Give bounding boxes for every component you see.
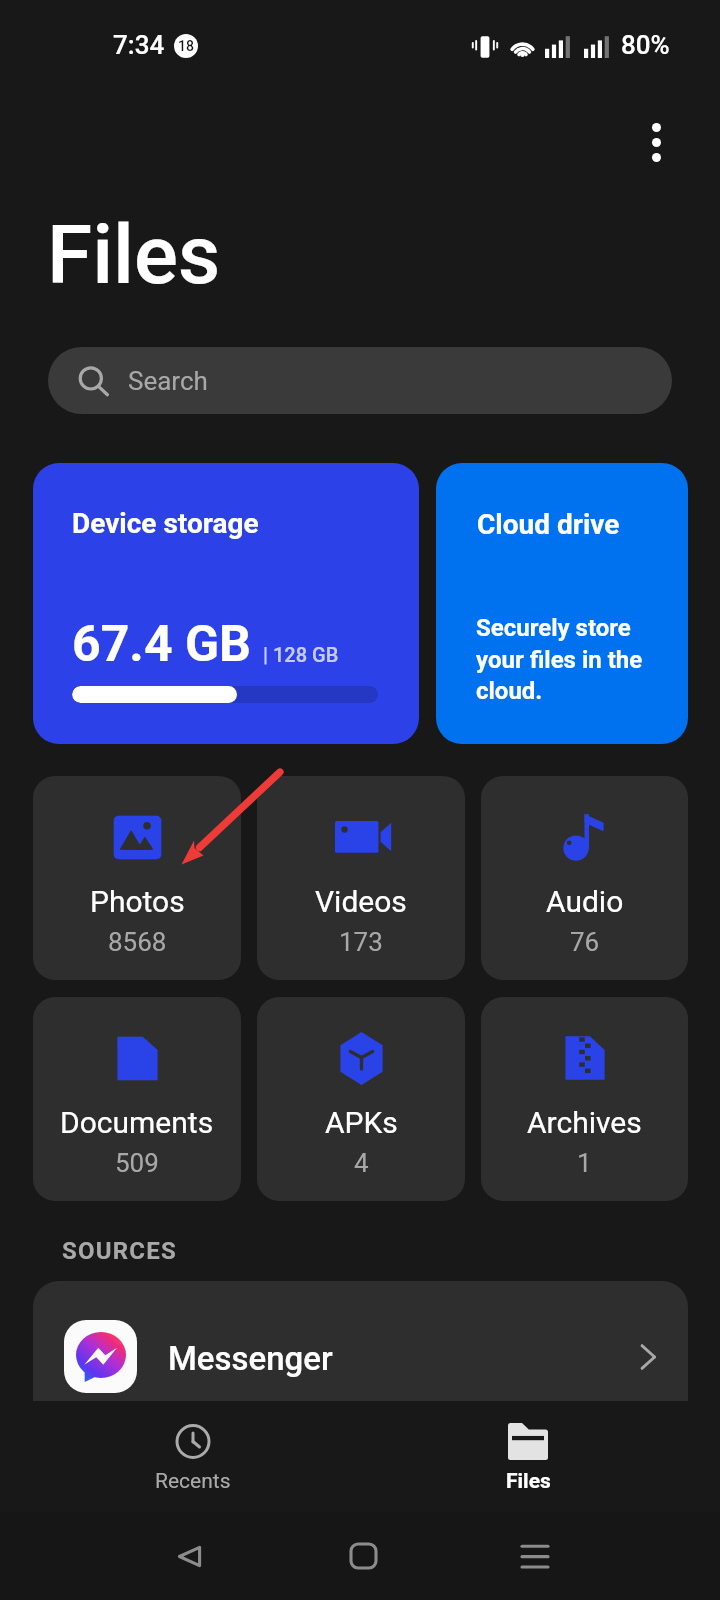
staticText: 509 — [115, 1148, 159, 1178]
button[interactable]: Files — [458, 1401, 598, 1512]
button[interactable]: Home — [298, 1512, 428, 1600]
button[interactable]: Recents — [123, 1401, 263, 1512]
button[interactable]: Search — [48, 347, 672, 414]
staticText: Documents — [60, 1105, 214, 1140]
button[interactable]: Documents — [33, 997, 241, 1201]
staticText: Securely store your files in the cloud. — [476, 614, 656, 704]
button[interactable]: Device storage — [33, 463, 419, 744]
staticText: Photos — [90, 884, 185, 919]
staticText: Messenger — [168, 1339, 333, 1378]
button[interactable]: APKs — [257, 997, 465, 1201]
button[interactable]: Photos — [33, 776, 241, 980]
staticText: Files — [506, 1469, 551, 1494]
staticText: 18 — [178, 38, 194, 54]
staticText: SOURCES — [62, 1237, 177, 1265]
button[interactable]: More options — [628, 114, 684, 170]
staticText: 67.4 GB — [72, 615, 251, 674]
staticText: Cloud drive — [477, 508, 620, 541]
staticText: Recents — [155, 1469, 231, 1494]
staticText: Audio — [546, 884, 624, 919]
staticText: 8568 — [108, 927, 167, 957]
staticText: 80% — [621, 30, 670, 60]
staticText: APKs — [325, 1105, 398, 1140]
button[interactable]: Cloud drive — [436, 463, 688, 744]
staticText: Device storage — [72, 507, 259, 540]
staticText: 76 — [570, 927, 600, 957]
button[interactable]: Videos — [257, 776, 465, 980]
staticText: 7:34 — [113, 30, 165, 60]
button[interactable]: Archives — [481, 997, 688, 1201]
button[interactable]: Recent apps — [470, 1512, 600, 1600]
staticText: Search — [128, 366, 208, 396]
staticText: | 128 GB — [263, 643, 339, 666]
staticText: Files — [47, 207, 221, 303]
staticText: Videos — [315, 884, 407, 919]
staticText: 1 — [577, 1148, 592, 1178]
staticText: 4 — [354, 1148, 369, 1178]
button[interactable]: Back — [125, 1512, 255, 1600]
button[interactable]: Messenger — [33, 1281, 688, 1406]
button[interactable]: Audio — [481, 776, 688, 980]
staticText: 173 — [339, 927, 383, 957]
staticText: Archives — [527, 1105, 642, 1140]
